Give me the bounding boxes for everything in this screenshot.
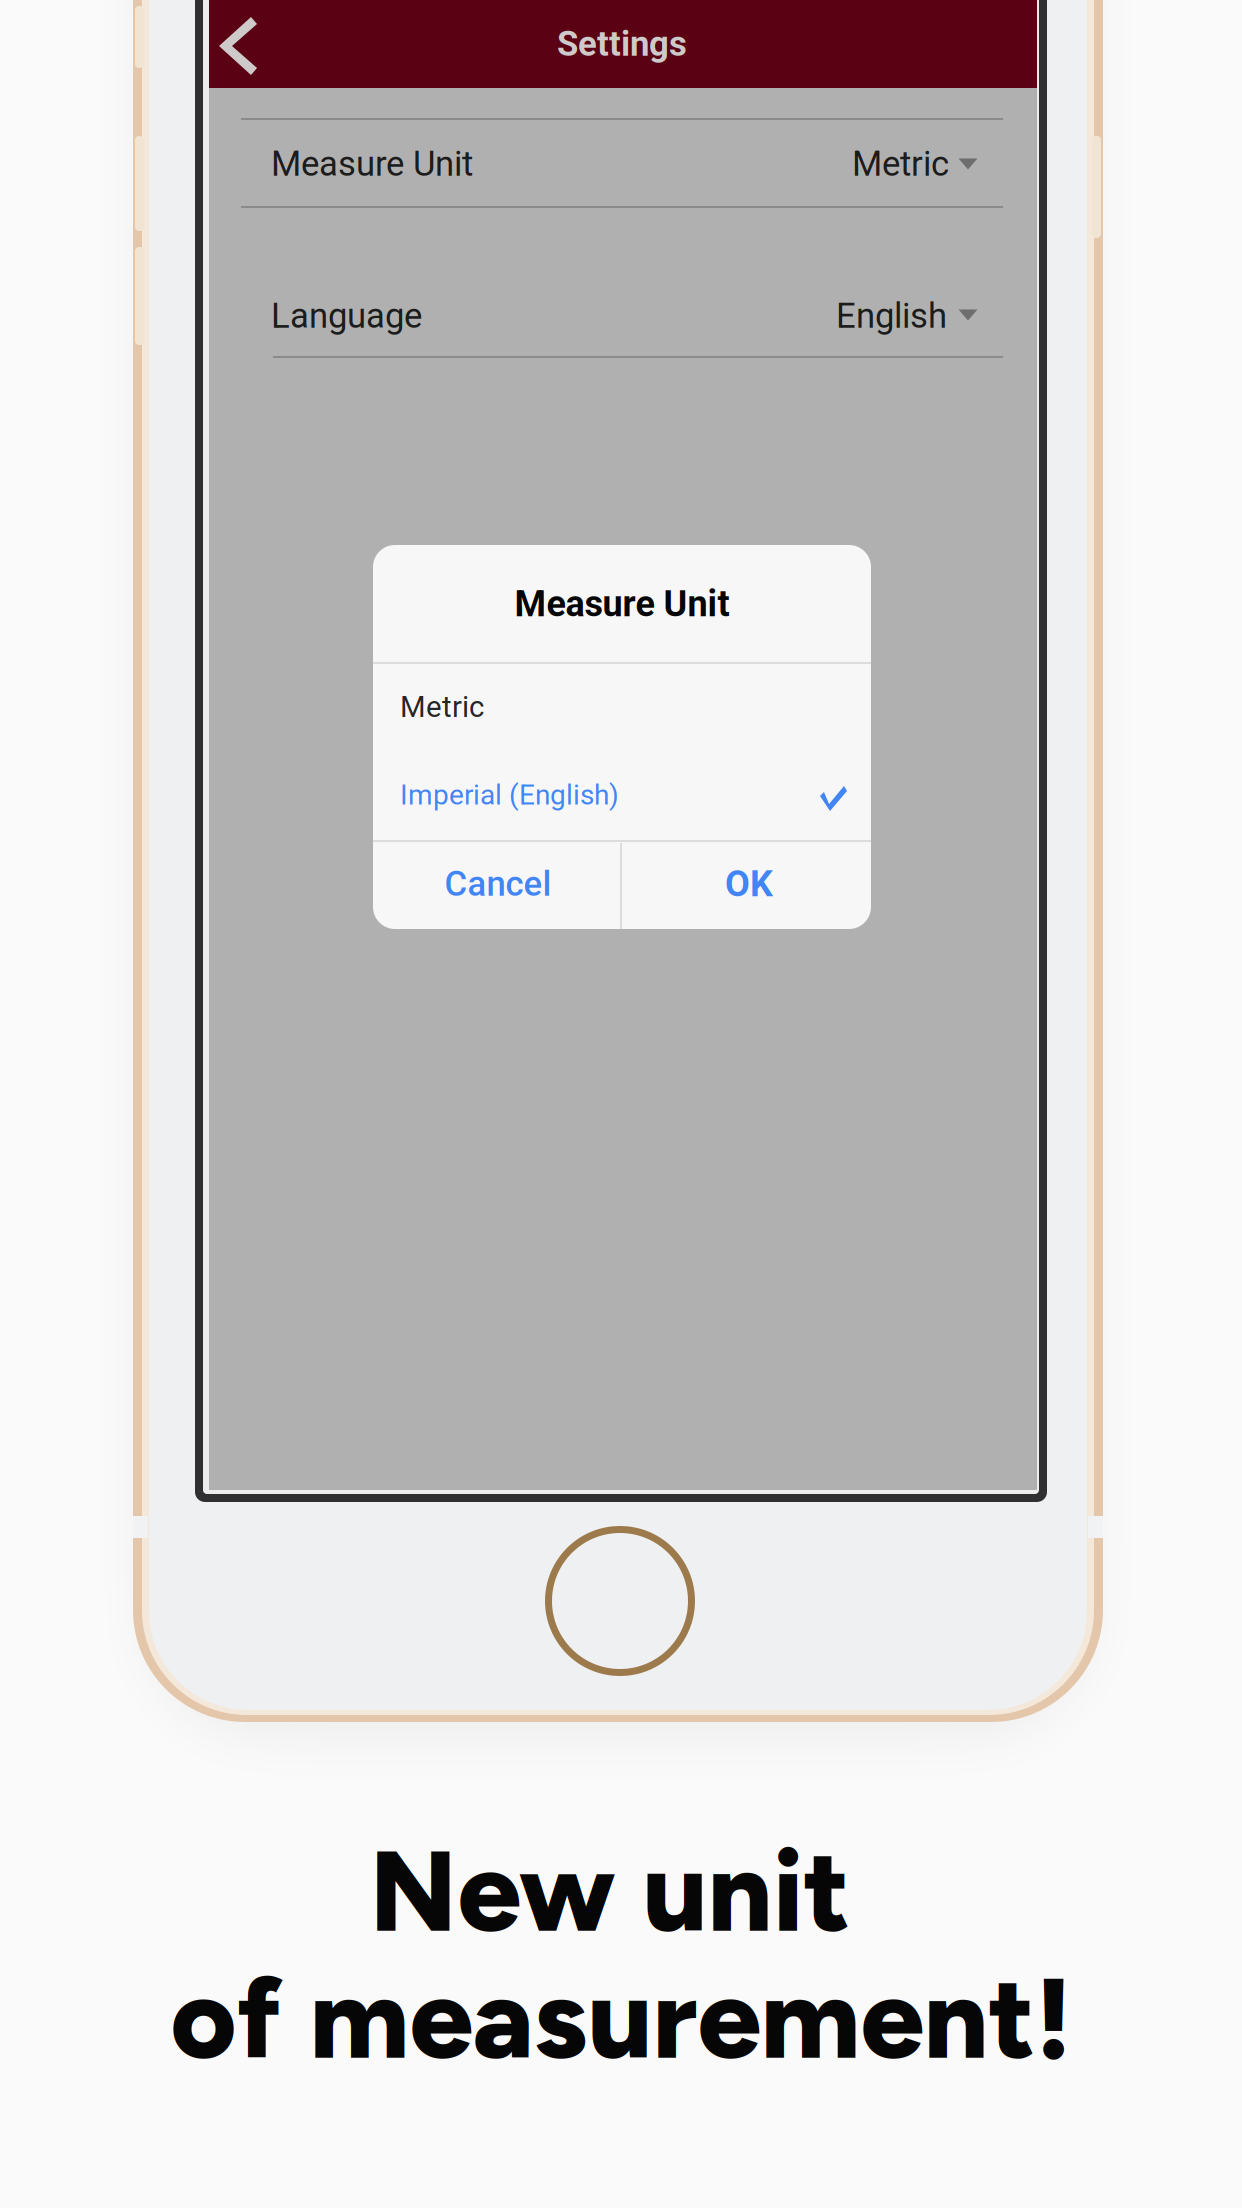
button[interactable]: Imperial (English): [0, 0, 1242, 2208]
staticText: English: [836, 296, 947, 336]
staticText: Imperial (English): [400, 779, 619, 811]
button[interactable]: [0, 0, 1242, 2208]
button[interactable]: Metric: [0, 0, 1242, 2208]
staticText: Measure Unit: [271, 144, 473, 184]
staticText: of measurement!: [170, 1950, 1071, 2086]
staticText: New unit: [369, 1823, 850, 1959]
button[interactable]: Back: [0, 0, 1242, 2208]
staticText: Metric: [852, 144, 949, 184]
button[interactable]: Language: [0, 0, 1242, 2208]
staticText: Language: [271, 296, 422, 336]
button[interactable]: OK: [0, 0, 1242, 2208]
staticText: Measure Unit: [514, 583, 729, 625]
staticText: OK: [725, 863, 773, 905]
staticText: Metric: [400, 690, 484, 724]
staticText: Settings: [557, 24, 687, 64]
button[interactable]: Measure Unit: [0, 0, 1242, 2208]
button[interactable]: Cancel: [0, 0, 1242, 2208]
staticText: Cancel: [444, 864, 551, 904]
